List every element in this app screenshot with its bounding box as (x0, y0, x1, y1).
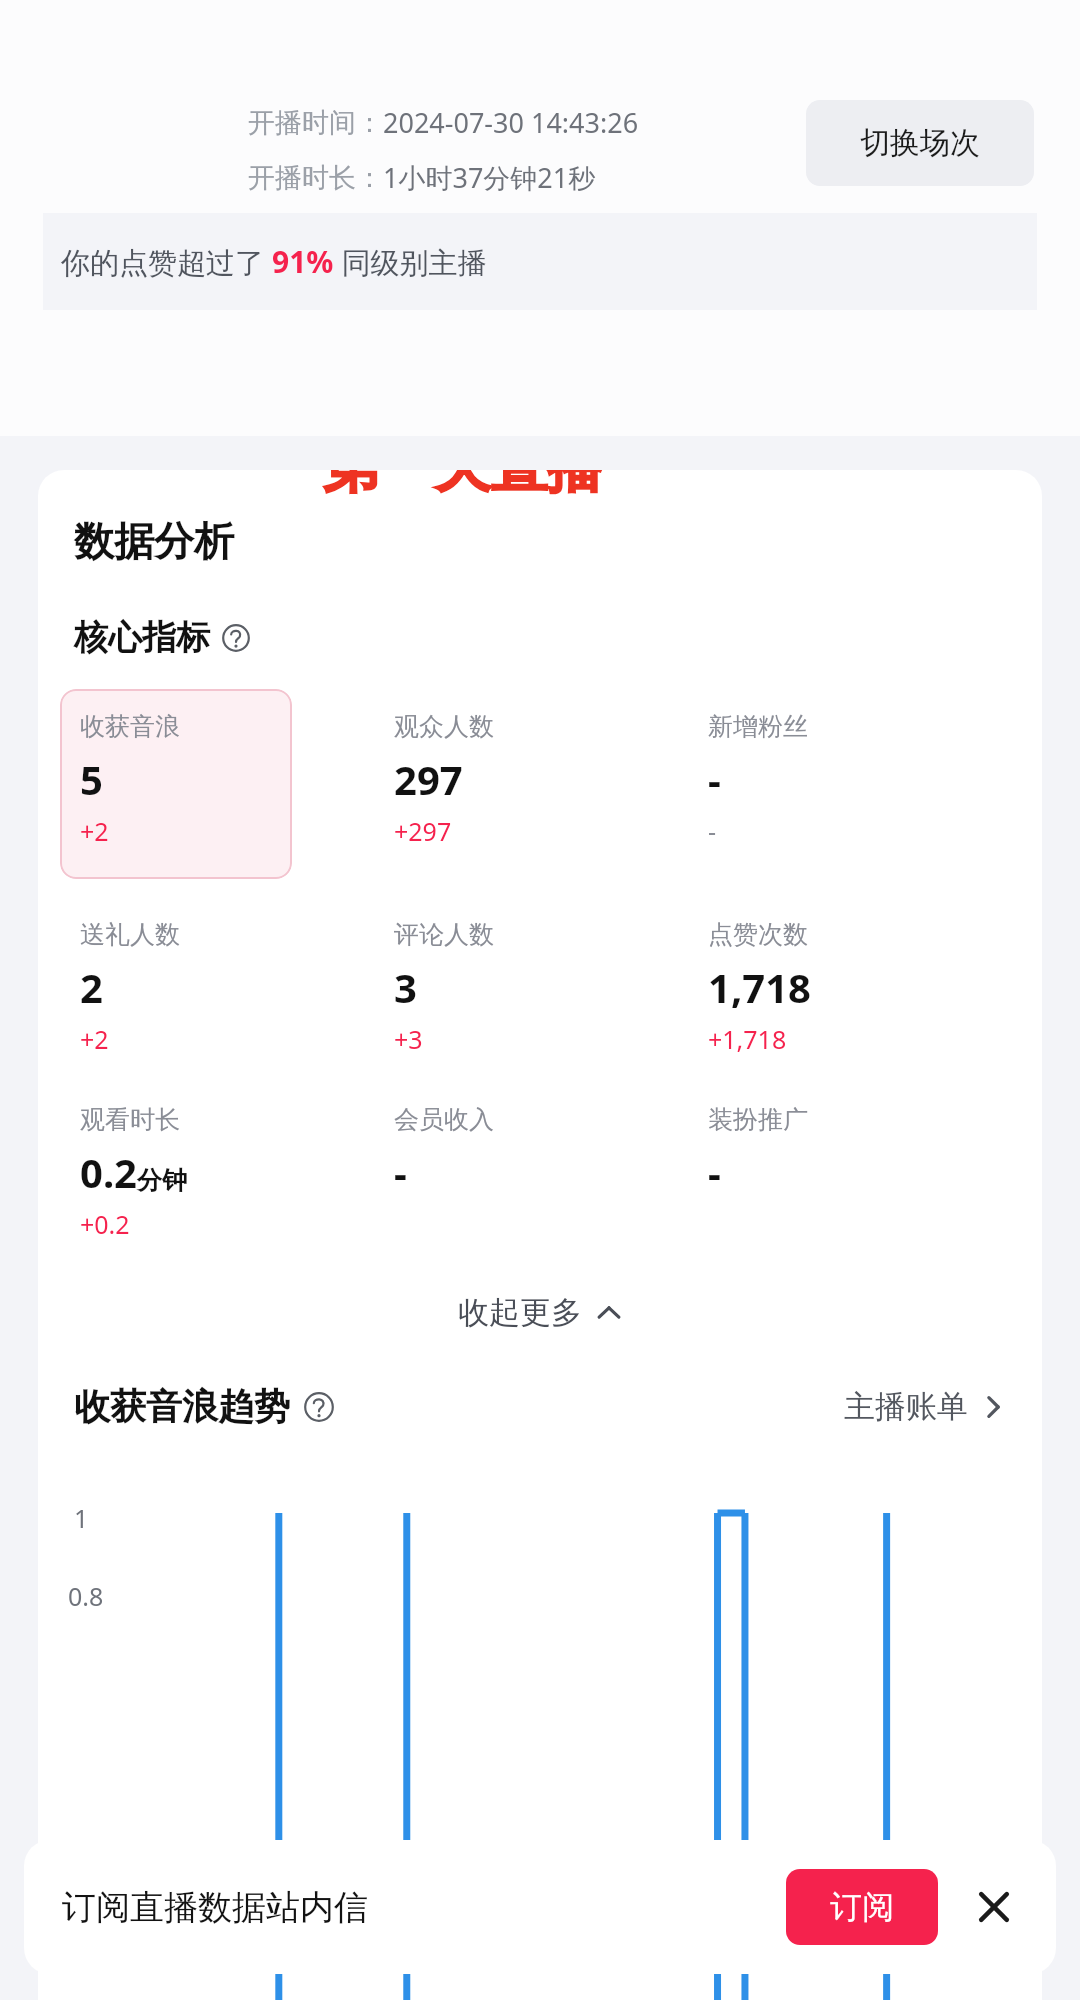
staticText: 装扮推广 (708, 1104, 808, 1135)
button[interactable]: 收起更多 (438, 1285, 642, 1340)
staticText: +2 (80, 814, 109, 848)
staticText: 核心指标 (74, 616, 210, 659)
staticText: 送礼人数 (80, 919, 180, 950)
staticText: 第一天直播 (326, 470, 606, 506)
staticText: +297 (394, 814, 452, 848)
staticText: 同级别主播 (334, 242, 487, 282)
staticText: +1,718 (708, 1022, 787, 1056)
staticText: 第一天直播 (323, 470, 603, 507)
staticText: 会员收入 (394, 1104, 494, 1135)
staticText: 新增粉丝 (708, 711, 808, 742)
button[interactable]: 切换场次 (806, 100, 1034, 186)
staticText: 第一天直播 (327, 470, 607, 503)
staticText: +2 (80, 1022, 109, 1056)
button[interactable]: 订阅 (786, 1869, 938, 1945)
staticText: 收获音浪 (80, 711, 180, 742)
staticText: 第一天直播 (320, 470, 600, 506)
staticText: 第一天直播 (320, 470, 600, 500)
staticText: - (394, 1145, 407, 1199)
staticText: 主播账单 (844, 1387, 968, 1426)
staticText: - (708, 752, 721, 806)
staticText: 2 (80, 960, 103, 1014)
staticText: - (708, 1145, 721, 1199)
staticText: 第一天直播 (323, 470, 603, 503)
staticText: 点赞次数 (708, 919, 808, 950)
staticText: 第一天直播 (319, 470, 599, 503)
staticText: 数据分析 (74, 516, 234, 566)
button[interactable] (60, 689, 292, 879)
staticText: 观众人数 (394, 711, 494, 742)
staticText: 第一天直播 (323, 470, 603, 499)
staticText: 第一天直播 (326, 470, 606, 500)
staticText: 观看时长 (80, 1104, 180, 1135)
staticText: 订阅 (830, 1887, 894, 1927)
staticText: +3 (394, 1022, 423, 1056)
staticText: 297 (394, 752, 463, 806)
staticText: 分钟 (137, 1165, 187, 1196)
button[interactable]: Close (966, 1879, 1022, 1935)
staticText: 5 (80, 752, 103, 806)
staticText: 开播时长： (248, 161, 383, 195)
staticText: 0.2 (80, 1145, 137, 1199)
staticText: 收获音浪趋势 (74, 1384, 290, 1429)
staticText: 3 (394, 960, 417, 1014)
staticText: 切换场次 (860, 124, 980, 162)
staticText: 你的点赞超过了 (61, 242, 272, 282)
staticText: 收起更多 (458, 1293, 582, 1332)
staticText: 1,718 (708, 960, 811, 1014)
staticText: 开播时间： (248, 106, 383, 140)
staticText: 2024-07-30 14:43:26 (383, 104, 639, 141)
staticText: 1小时37分钟21秒 (383, 159, 596, 196)
staticText: 订阅直播数据站内信 (62, 1886, 368, 1929)
staticText: 评论人数 (394, 919, 494, 950)
button[interactable]: Help (222, 624, 250, 652)
staticText: +0.2 (80, 1207, 130, 1241)
button[interactable]: 主播账单 (844, 1387, 1006, 1426)
staticText: - (708, 814, 717, 848)
staticText: 1 (74, 1501, 89, 1535)
staticText: 0.8 (68, 1579, 104, 1613)
staticText: 91% (272, 241, 334, 282)
button[interactable]: Help (304, 1392, 334, 1422)
